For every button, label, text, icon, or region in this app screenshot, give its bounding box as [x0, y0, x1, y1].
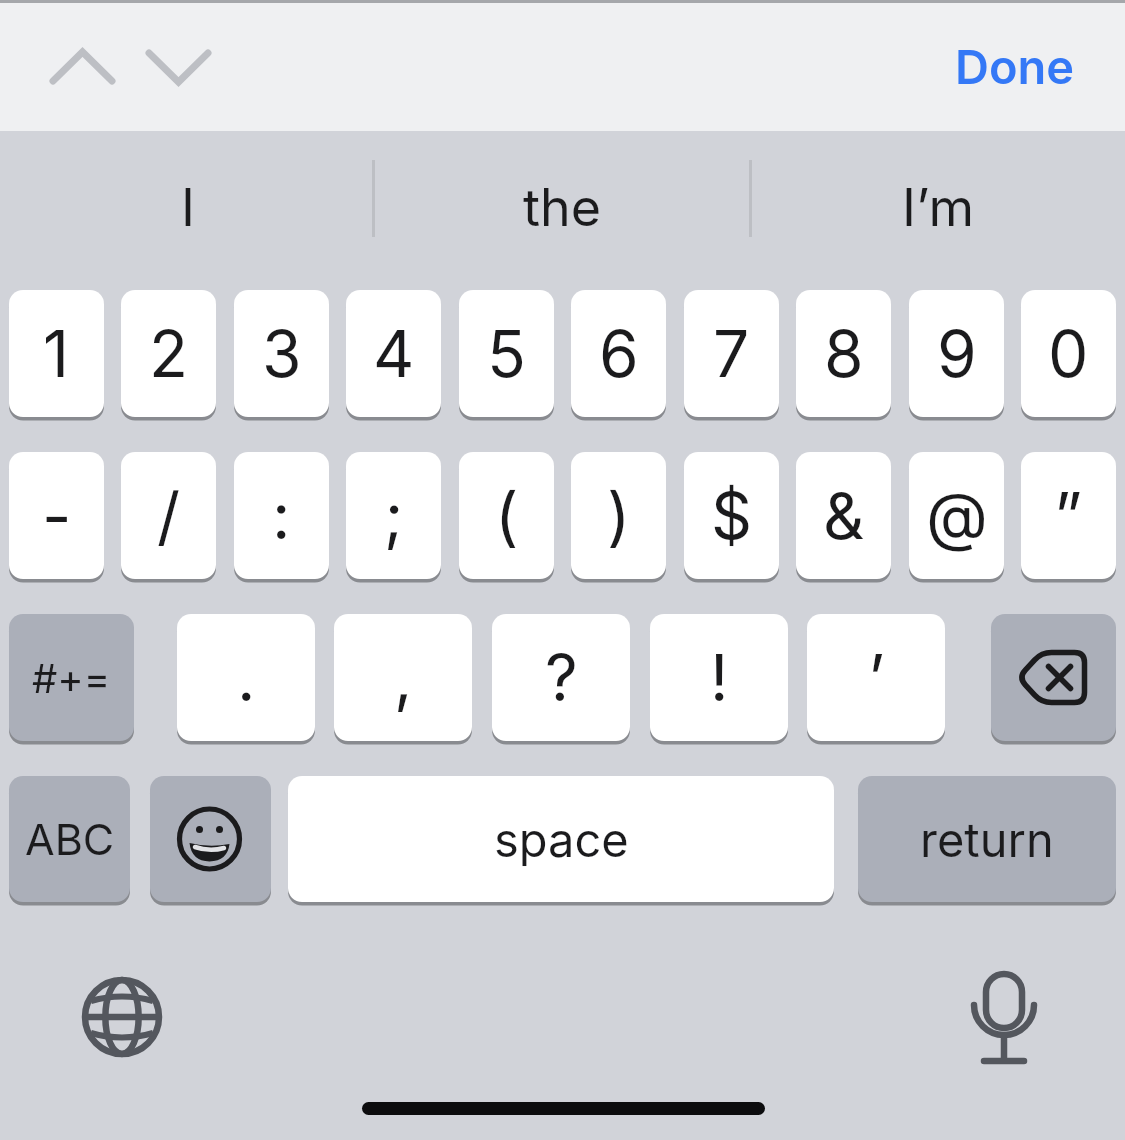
staticText: $: [711, 477, 753, 554]
button[interactable]: -: [9, 452, 104, 579]
staticText: :: [272, 477, 291, 554]
staticText: 0: [1048, 315, 1089, 392]
button[interactable]: [954, 962, 1054, 1072]
button[interactable]: 9: [909, 290, 1004, 417]
button[interactable]: [150, 776, 271, 902]
staticText: 5: [487, 315, 526, 392]
staticText: ”: [1054, 477, 1083, 554]
button[interactable]: (: [459, 452, 554, 579]
button[interactable]: ,: [334, 614, 472, 741]
button[interactable]: 8: [796, 290, 891, 417]
button[interactable]: [72, 967, 172, 1067]
button[interactable]: I’m: [750, 131, 1125, 283]
staticText: I’m: [902, 176, 974, 239]
button[interactable]: :: [234, 452, 329, 579]
staticText: 8: [824, 315, 864, 392]
staticText: &: [823, 477, 865, 554]
button[interactable]: [136, 38, 226, 98]
staticText: 4: [373, 315, 415, 392]
staticText: I: [181, 176, 195, 239]
staticText: the: [523, 176, 602, 239]
staticText: .: [237, 639, 256, 716]
button[interactable]: !: [650, 614, 788, 741]
button[interactable]: ?: [492, 614, 630, 741]
button[interactable]: 3: [234, 290, 329, 417]
button[interactable]: #+=: [9, 614, 134, 741]
staticText: ): [607, 477, 631, 554]
button[interactable]: [991, 614, 1116, 741]
button[interactable]: 1: [9, 290, 104, 417]
staticText: ABC: [25, 813, 115, 865]
button[interactable]: Done: [915, 20, 1075, 112]
button[interactable]: /: [121, 452, 216, 579]
button[interactable]: &: [796, 452, 891, 579]
button[interactable]: the: [375, 131, 750, 283]
staticText: ’: [868, 639, 885, 716]
button[interactable]: 6: [571, 290, 666, 417]
button[interactable]: .: [177, 614, 315, 741]
button[interactable]: ): [571, 452, 666, 579]
staticText: 6: [599, 315, 639, 392]
staticText: #+=: [32, 654, 111, 702]
staticText: Done: [955, 38, 1075, 95]
staticText: 2: [149, 315, 189, 392]
staticText: 7: [713, 315, 750, 392]
button[interactable]: space: [288, 776, 834, 902]
button[interactable]: ”: [1021, 452, 1116, 579]
button[interactable]: ;: [346, 452, 441, 579]
button[interactable]: return: [858, 776, 1116, 902]
button[interactable]: $: [684, 452, 779, 579]
button[interactable]: [40, 38, 130, 98]
staticText: (: [495, 477, 519, 554]
staticText: -: [42, 477, 72, 554]
staticText: 3: [262, 315, 302, 392]
staticText: ,: [394, 639, 413, 716]
button[interactable]: ’: [807, 614, 945, 741]
staticText: ?: [545, 639, 578, 716]
button[interactable]: 7: [684, 290, 779, 417]
staticText: 1: [43, 315, 70, 392]
staticText: /: [157, 477, 181, 554]
button[interactable]: 5: [459, 290, 554, 417]
staticText: ;: [384, 477, 404, 554]
button[interactable]: ABC: [9, 776, 130, 902]
staticText: return: [920, 811, 1054, 868]
button[interactable]: I: [0, 131, 375, 283]
button[interactable]: @: [909, 452, 1004, 579]
staticText: space: [494, 811, 629, 868]
staticText: !: [710, 639, 729, 716]
staticText: 9: [937, 315, 977, 392]
button[interactable]: 0: [1021, 290, 1116, 417]
button[interactable]: 4: [346, 290, 441, 417]
button[interactable]: 2: [121, 290, 216, 417]
staticText: @: [926, 477, 988, 554]
